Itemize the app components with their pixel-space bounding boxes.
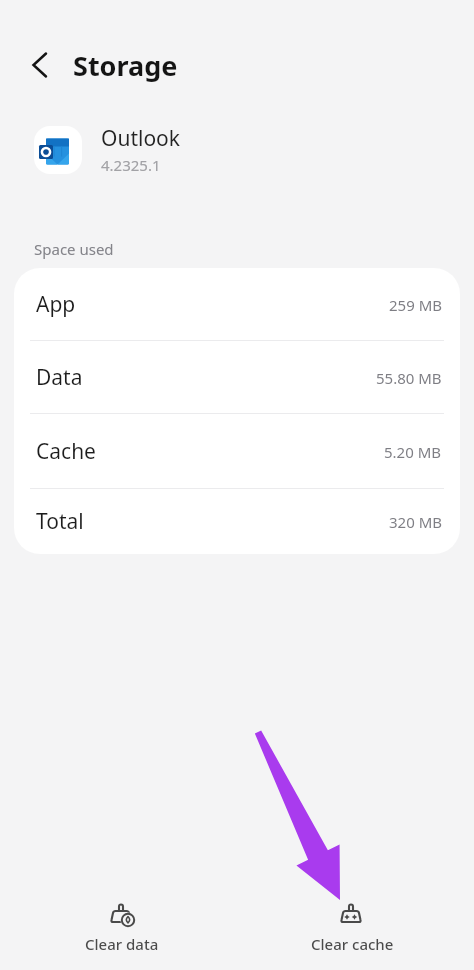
- staticText: Storage: [73, 47, 178, 84]
- staticText: 4.2325.1: [101, 155, 161, 175]
- staticText: Total: [36, 507, 84, 536]
- button[interactable]: Total: [14, 489, 460, 554]
- staticText: Data: [36, 363, 83, 392]
- button[interactable]: Storage: [18, 42, 178, 88]
- staticText: 5.20 MB: [384, 442, 442, 462]
- staticText: Space used: [34, 239, 114, 259]
- button[interactable]: Outlook: [34, 124, 181, 175]
- staticText: Clear data: [85, 934, 159, 954]
- button[interactable]: Clear data: [52, 897, 192, 954]
- button[interactable]: Clear cache: [282, 897, 422, 954]
- staticText: Outlook: [101, 124, 181, 153]
- button[interactable]: Cache: [14, 414, 460, 489]
- staticText: Cache: [36, 437, 96, 466]
- staticText: 320 MB: [389, 512, 442, 532]
- button[interactable]: App: [14, 268, 460, 341]
- staticText: 55.80 MB: [376, 368, 442, 388]
- staticText: 259 MB: [389, 295, 442, 315]
- staticText: Clear cache: [311, 934, 394, 954]
- button[interactable]: Data: [14, 341, 460, 414]
- staticText: App: [36, 290, 76, 319]
